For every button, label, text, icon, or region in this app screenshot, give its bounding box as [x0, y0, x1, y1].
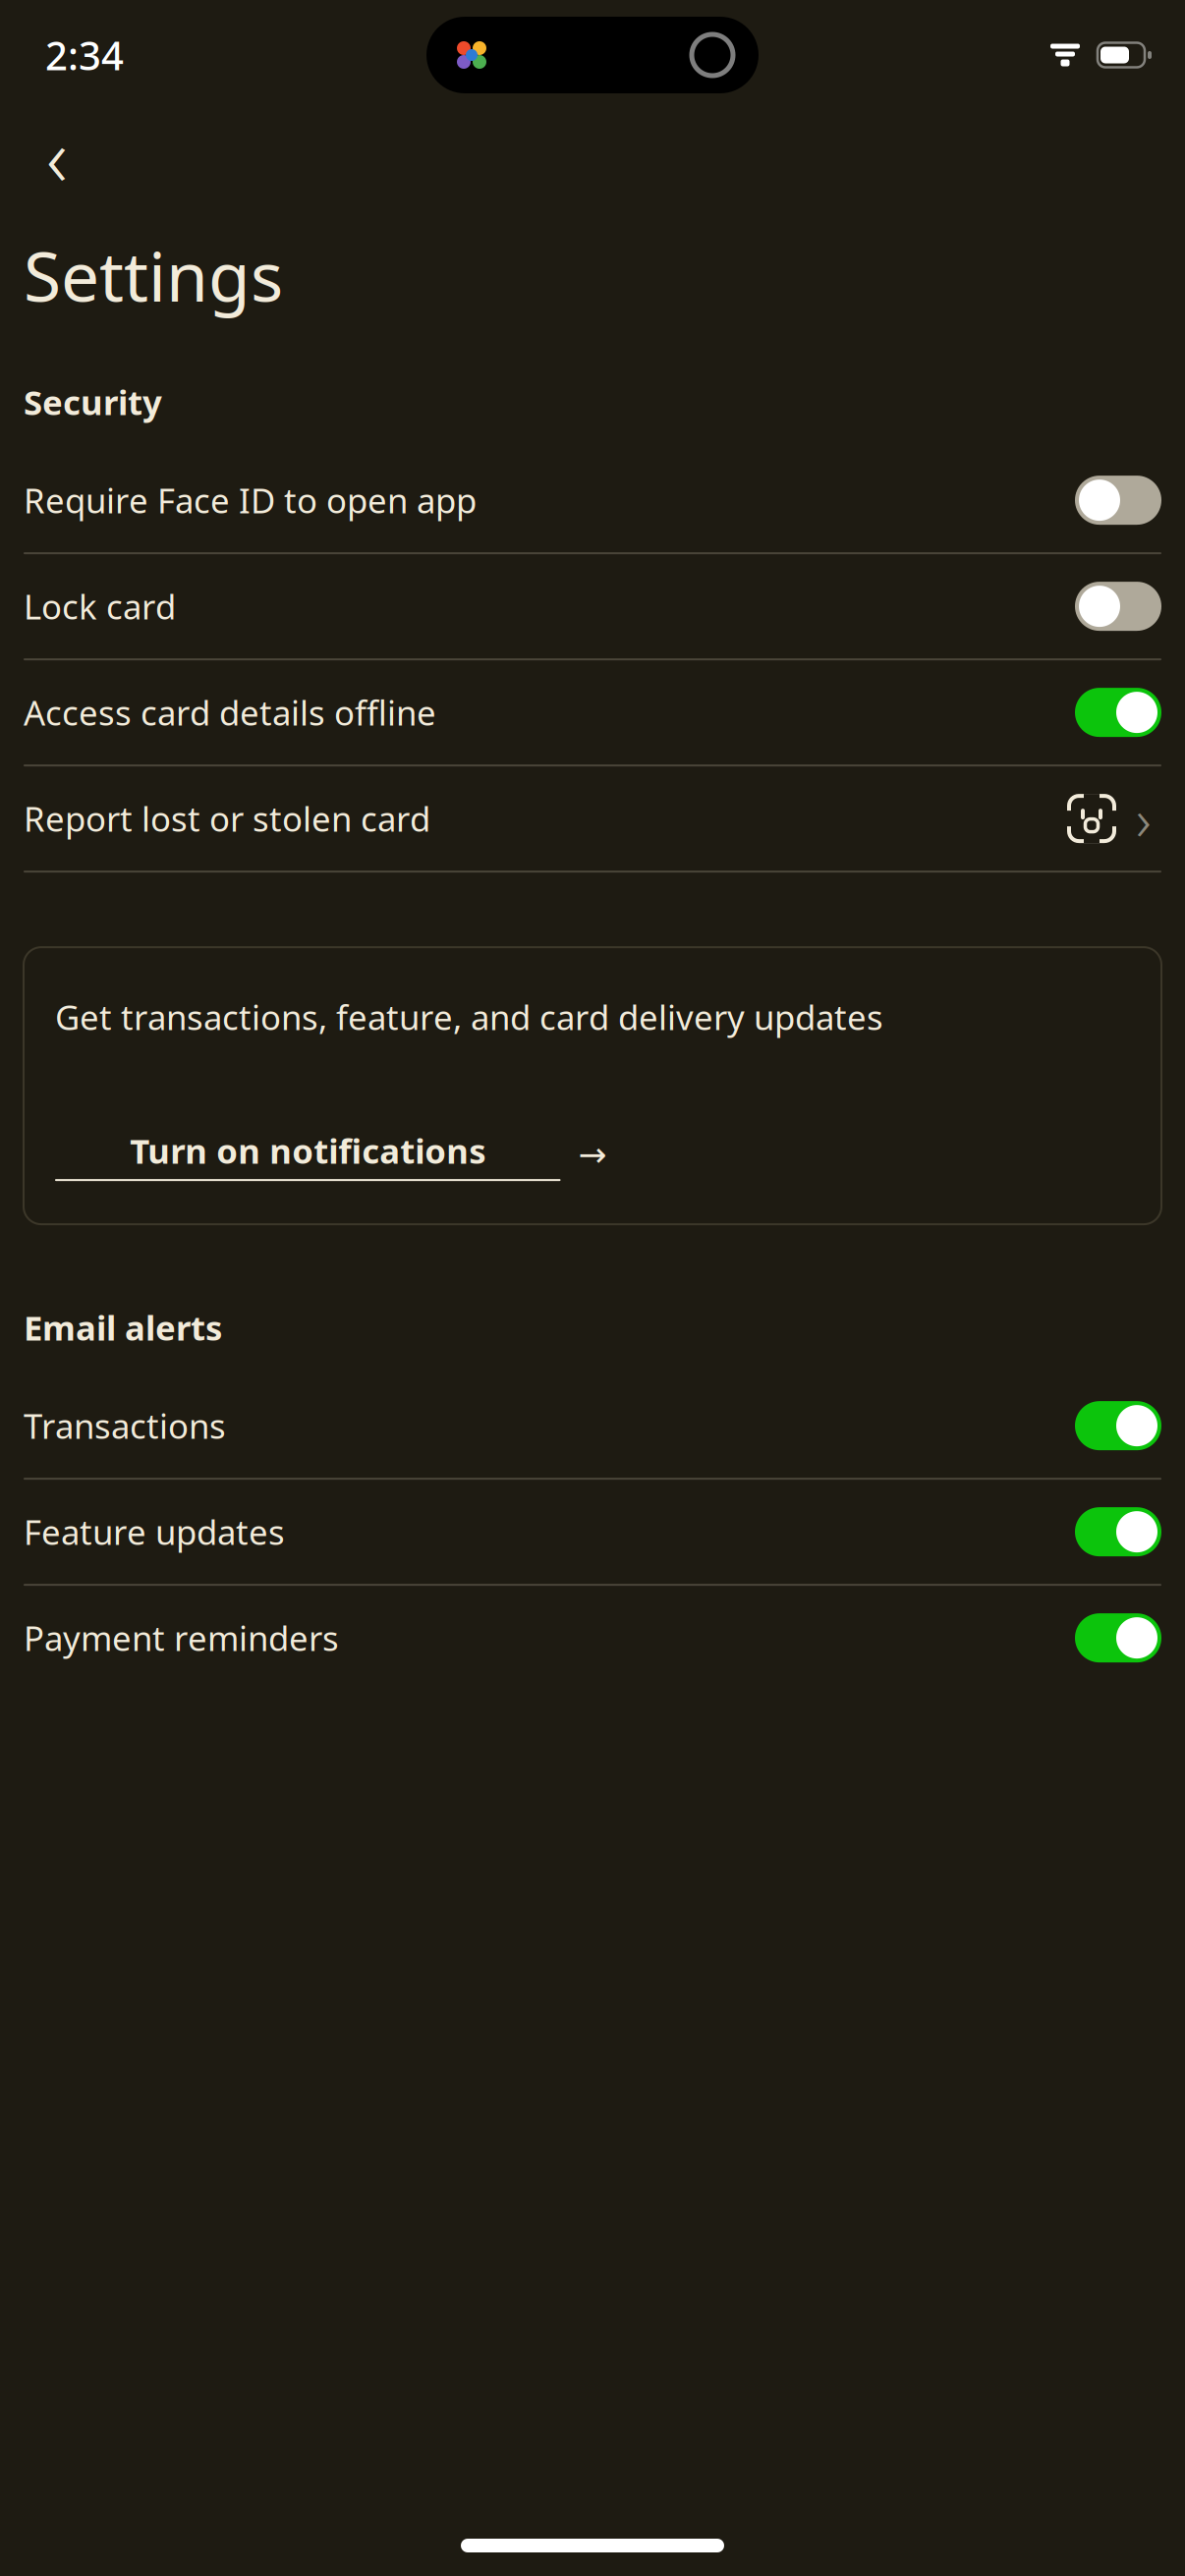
staticText: →: [578, 1135, 607, 1174]
staticText: Feature updates: [24, 1509, 285, 1554]
staticText: ›: [1136, 780, 1152, 857]
staticText: Lock card: [24, 584, 176, 629]
button[interactable]: Report lost or stolen card: [0, 766, 1185, 871]
button[interactable]: Transactions: [0, 1374, 1185, 1478]
button[interactable]: Lock card: [0, 554, 1185, 658]
staticText: Security: [24, 379, 162, 425]
staticText: ‹: [46, 101, 68, 209]
button[interactable]: Access card details offline: [0, 660, 1185, 764]
staticText: Access card details offline: [24, 690, 436, 735]
staticText: Get transactions, feature, and card deli…: [55, 994, 883, 1040]
staticText: Turn on notifications: [130, 1128, 486, 1173]
staticText: Require Face ID to open app: [24, 478, 477, 523]
staticText: Report lost or stolen card: [24, 796, 430, 841]
button[interactable]: Turn on notifications: [24, 1128, 1161, 1224]
button[interactable]: Payment reminders: [0, 1586, 1185, 1690]
staticText: Transactions: [24, 1403, 226, 1448]
button[interactable]: Back: [28, 126, 86, 185]
button[interactable]: Feature updates: [0, 1480, 1185, 1584]
staticText: Payment reminders: [24, 1615, 339, 1660]
staticText: Email alerts: [24, 1305, 222, 1350]
button[interactable]: Require Face ID to open app: [0, 448, 1185, 552]
staticText: 2:34: [45, 29, 124, 81]
staticText: Settings: [24, 230, 283, 320]
